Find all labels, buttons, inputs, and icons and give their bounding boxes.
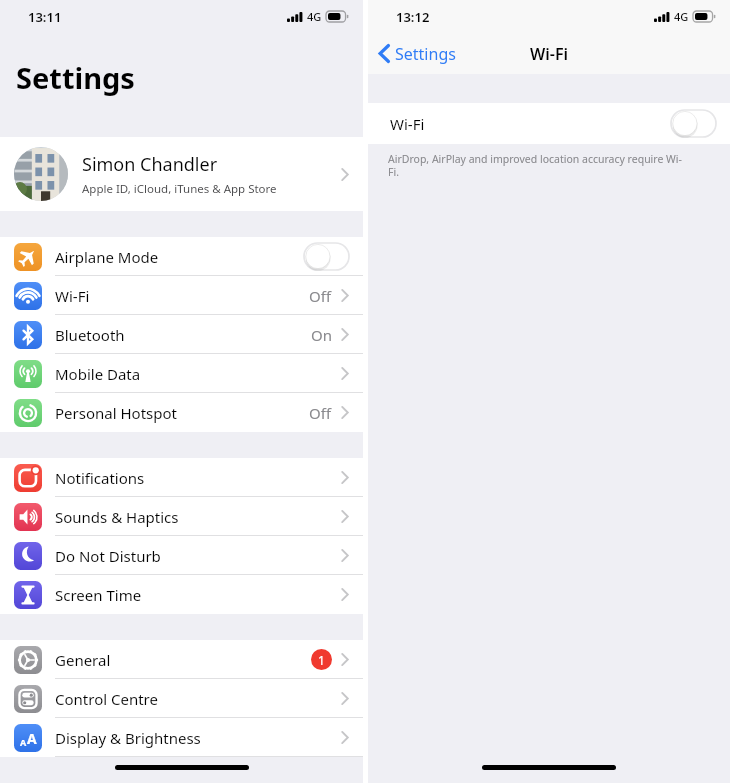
staticText: Simon Chandler <box>82 152 218 177</box>
button[interactable]: Personal Hotspot <box>0 393 363 432</box>
staticText: Mobile Data <box>55 364 341 384</box>
staticText: 13:12 <box>396 8 430 26</box>
staticText: Apple ID, iCloud, iTunes & App Store <box>82 181 277 197</box>
staticText: Wi-Fi <box>530 43 569 65</box>
button[interactable]: Sounds & Haptics <box>0 497 363 536</box>
staticText: Wi-Fi <box>390 114 425 134</box>
button[interactable]: A <box>0 718 363 757</box>
staticText: AirDrop, AirPlay and improved location a… <box>388 152 684 179</box>
staticText: 4G <box>307 9 322 24</box>
button[interactable]: Do Not Disturb <box>0 536 363 575</box>
staticText: Off <box>309 286 332 306</box>
button[interactable]: Screen Time <box>0 575 363 614</box>
button[interactable]: Toggle, off <box>671 110 716 137</box>
staticText: Notifications <box>55 468 341 488</box>
button[interactable]: Settings <box>368 33 466 74</box>
staticText: General <box>55 650 311 670</box>
staticText: Off <box>309 403 332 423</box>
button[interactable]: Bluetooth <box>0 315 363 354</box>
staticText: On <box>311 325 332 345</box>
staticText: A <box>20 736 27 748</box>
staticText: Bluetooth <box>55 325 311 345</box>
staticText: Sounds & Haptics <box>55 507 341 527</box>
staticText: Settings <box>16 58 135 97</box>
staticText: 1 <box>318 652 325 668</box>
staticText: 4G <box>674 9 689 24</box>
button[interactable]: Wi-Fi <box>0 276 363 315</box>
staticText: Control Centre <box>55 689 341 709</box>
staticText: Airplane Mode <box>55 247 304 267</box>
staticText: A <box>27 729 37 748</box>
staticText: Do Not Disturb <box>55 546 341 566</box>
button[interactable]: Mobile Data <box>0 354 363 393</box>
staticText: Display & Brightness <box>55 728 341 748</box>
staticText: Wi-Fi <box>55 286 309 306</box>
button[interactable]: General <box>0 640 363 679</box>
button[interactable]: Simon Chandler <box>0 137 363 211</box>
staticText: Screen Time <box>55 585 341 605</box>
staticText: Settings <box>395 43 456 65</box>
button[interactable]: Toggle, off <box>304 243 349 270</box>
button[interactable]: Control Centre <box>0 679 363 718</box>
button[interactable]: Notifications <box>0 458 363 497</box>
button[interactable]: Airplane Mode <box>0 237 363 276</box>
button[interactable]: Wi-Fi <box>368 103 730 144</box>
staticText: Personal Hotspot <box>55 403 309 423</box>
staticText: 13:11 <box>28 8 62 26</box>
